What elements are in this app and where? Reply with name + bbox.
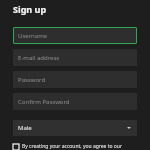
button[interactable]: Confirm Password [13, 93, 137, 110]
staticText: Confirm Password [18, 98, 70, 106]
other: Agree to terms checkbox [13, 144, 19, 150]
staticText: Password [18, 76, 46, 84]
button[interactable]: E-mail address [13, 49, 137, 66]
staticText: Sign up [13, 3, 47, 15]
staticText: Username [18, 32, 48, 40]
staticText: Male [18, 124, 32, 132]
staticText: By creating your account, you agree to o… [22, 143, 122, 150]
button[interactable]: Password [13, 71, 137, 88]
other: Open gender dropdown [126, 125, 132, 131]
staticText: E-mail address [18, 54, 60, 62]
button[interactable]: Username [13, 27, 137, 44]
button[interactable]: Male [13, 120, 137, 136]
button[interactable]: Agree to terms checkbox [13, 143, 137, 150]
